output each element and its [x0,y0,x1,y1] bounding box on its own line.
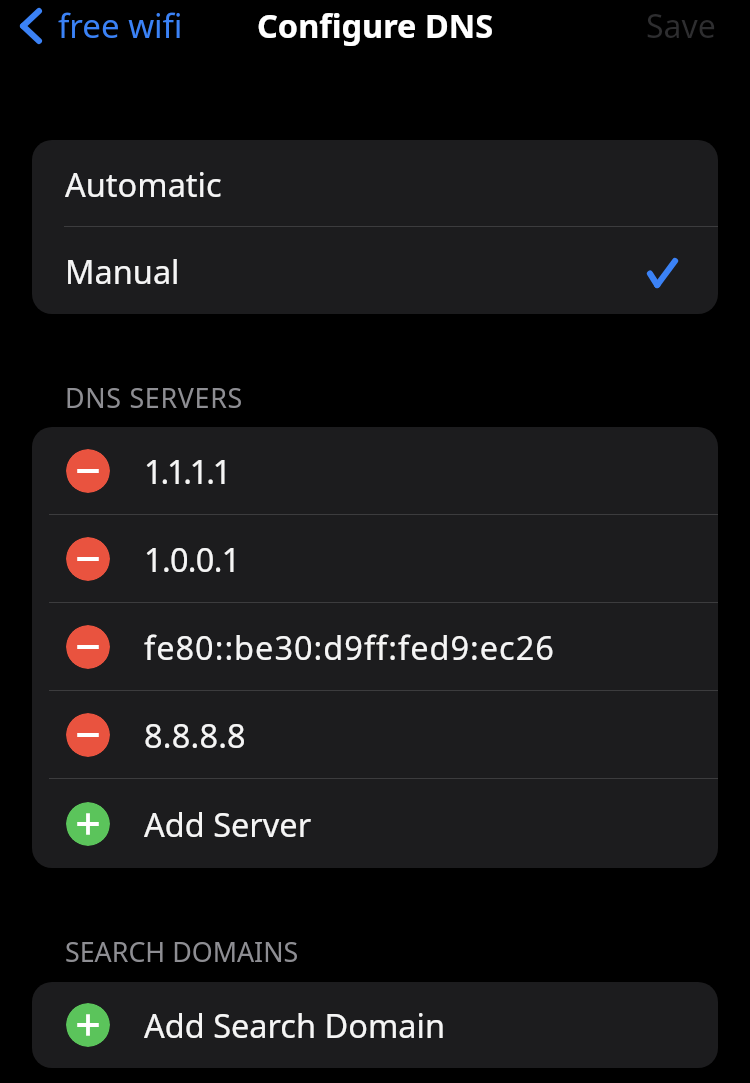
button[interactable]: Remove 1.0.0.1 [66,537,110,581]
staticText: Configure DNS [257,3,494,47]
staticText: SEARCH DOMAINS [65,933,299,970]
staticText: Add Search Domain [144,1003,445,1047]
staticText: Save [646,4,716,48]
button[interactable]: Remove 1.0.0.1 [32,515,718,603]
button[interactable]: Add Add Search Domain [32,982,718,1068]
staticText: Manual [65,249,180,293]
button[interactable]: Back to free wifi [0,0,199,52]
staticText: 1.1.1.1 [144,449,230,493]
staticText: DNS SERVERS [65,379,243,416]
button[interactable]: Remove 8.8.8.8 [32,691,718,779]
button[interactable]: Remove 1.1.1.1 [32,427,718,515]
button[interactable]: Add Add Server [66,802,110,846]
button[interactable]: Add Add Server [32,779,718,868]
button[interactable]: Remove 1.1.1.1 [66,449,110,493]
button[interactable]: Remove fe80::be30:d9ff:fed9:ec26 [66,625,110,669]
button[interactable]: Add Add Search Domain [66,1003,110,1047]
staticText: free wifi [58,3,183,48]
button[interactable]: Manual [32,227,718,314]
staticText: 1.0.0.1 [144,537,240,581]
button[interactable]: Automatic [32,140,718,227]
button[interactable]: Remove 8.8.8.8 [66,713,110,757]
button[interactable]: Save [622,0,750,52]
staticText: Add Server [144,802,312,846]
other: Selected [647,258,678,288]
staticText: Automatic [65,162,222,206]
staticText: 8.8.8.8 [144,713,246,757]
staticText: fe80::be30:d9ff:fed9:ec26 [144,625,555,669]
button[interactable]: Remove fe80::be30:d9ff:fed9:ec26 [32,603,718,691]
